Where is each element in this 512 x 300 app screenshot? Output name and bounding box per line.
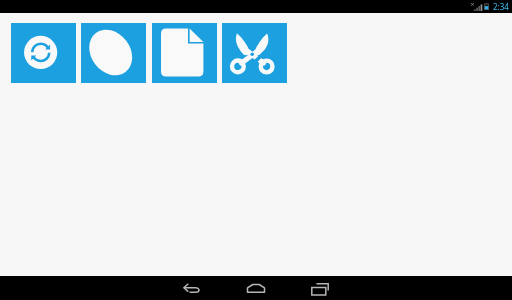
button[interactable]: Home [240,276,272,300]
staticText: 2:34 [493,1,509,12]
button[interactable]: Recent apps [304,276,336,300]
button[interactable]: Shape [81,23,146,83]
button[interactable]: Cut [222,23,287,83]
button[interactable]: Document [152,23,217,83]
button[interactable]: Sync [11,23,76,83]
button[interactable]: Back [176,276,208,300]
